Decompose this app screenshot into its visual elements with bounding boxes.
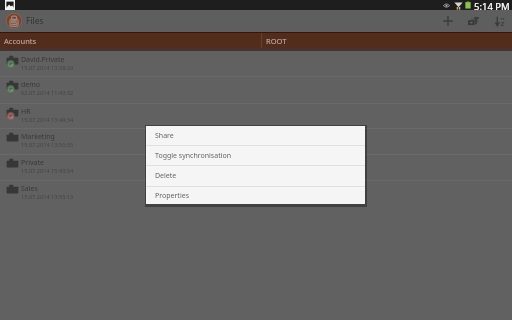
button[interactable]: Properties [146,187,365,204]
button[interactable]: Toggle synchronisation [146,146,365,165]
button[interactable]: Share [146,126,365,145]
staticText: ROOT [266,36,287,46]
button[interactable]: Sort [487,10,511,32]
button[interactable]: Sales [0,180,512,206]
button[interactable]: Add [435,10,461,32]
staticText: Sales [21,184,38,194]
button[interactable]: Delete [146,166,365,186]
staticText: 15.07.2014 13:58:20 [21,64,74,72]
staticText: David.Private [21,55,65,65]
staticText: demo [21,80,41,90]
staticText: Marketing [21,132,55,142]
staticText: 15.07.2014 13:49:34 [21,116,74,124]
staticText: 5:14 PM [474,0,510,10]
staticText: 15.07.2014 15:43:54 [21,167,74,175]
button[interactable]: Marketing [0,128,512,154]
staticText: 02.07.2014 11:43:32 [21,89,74,97]
staticText: Toggle synchronisation [155,151,232,161]
staticText: Private [21,158,44,168]
staticText: Files [26,15,44,27]
button[interactable]: Accounts [0,33,261,48]
staticText: Share [155,131,174,141]
button[interactable]: New folder [461,10,487,32]
staticText: Properties [155,191,189,201]
button[interactable]: ROOT [262,33,512,48]
staticText: 15.07.2014 13:55:13 [21,193,74,201]
button[interactable]: David.Private [0,51,512,76]
button[interactable]: demo [0,76,512,102]
button[interactable]: Private [0,154,512,180]
staticText: Accounts [4,36,37,46]
button[interactable]: HR [0,103,512,128]
staticText: Delete [155,171,177,181]
staticText: 15.07.2014 13:50:35 [21,141,74,149]
staticText: HR [21,107,31,117]
